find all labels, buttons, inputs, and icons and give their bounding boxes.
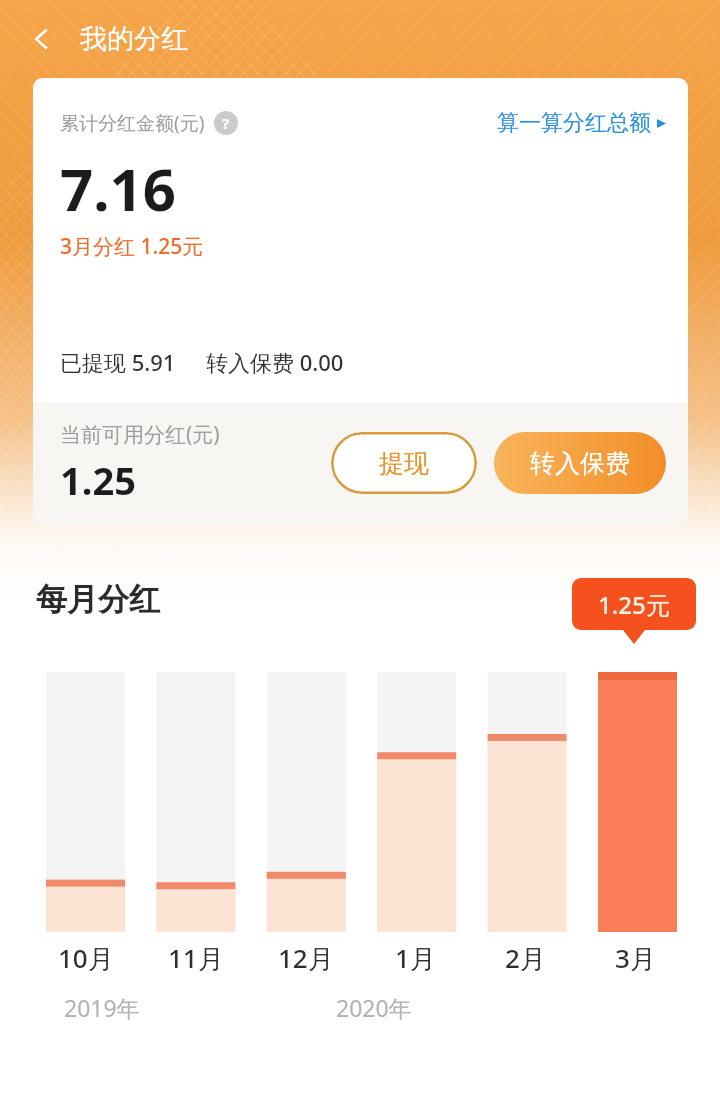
staticText: 算一算分红总额 [497, 109, 651, 137]
staticText: 11月 [168, 940, 224, 976]
staticText: ? [222, 113, 230, 133]
button[interactable]: 1.25元 [572, 578, 696, 630]
staticText: 我的分红 [80, 22, 188, 56]
staticText: 转入保费 0.00 [206, 347, 344, 377]
staticText: 3月分红 1.25元 [60, 232, 204, 261]
staticText: 2月 [505, 940, 546, 976]
button[interactable]: 算一算分红总额 [497, 105, 666, 141]
staticText: 7.16 [60, 149, 176, 228]
staticText: 每月分红 [36, 580, 160, 619]
staticText: 3月 [615, 940, 656, 976]
button[interactable]: Help [214, 111, 238, 135]
staticText: 转入保费 [530, 448, 630, 479]
staticText: 12月 [278, 940, 334, 976]
button[interactable]: 提现 [331, 432, 477, 494]
staticText: 当前可用分红(元) [60, 420, 220, 449]
staticText: 1月 [395, 940, 436, 976]
staticText: 2020年 [336, 992, 412, 1023]
staticText: 10月 [58, 940, 114, 976]
staticText: 2019年 [64, 992, 140, 1023]
staticText: 1.25元 [598, 588, 670, 621]
staticText: 累计分红金额(元) [60, 110, 205, 136]
staticText: 1.25 [60, 454, 136, 506]
button[interactable]: Back [16, 13, 68, 65]
staticText: 提现 [379, 448, 429, 479]
staticText: 已提现 5.91 [60, 347, 176, 377]
button[interactable]: 转入保费 [494, 432, 666, 494]
